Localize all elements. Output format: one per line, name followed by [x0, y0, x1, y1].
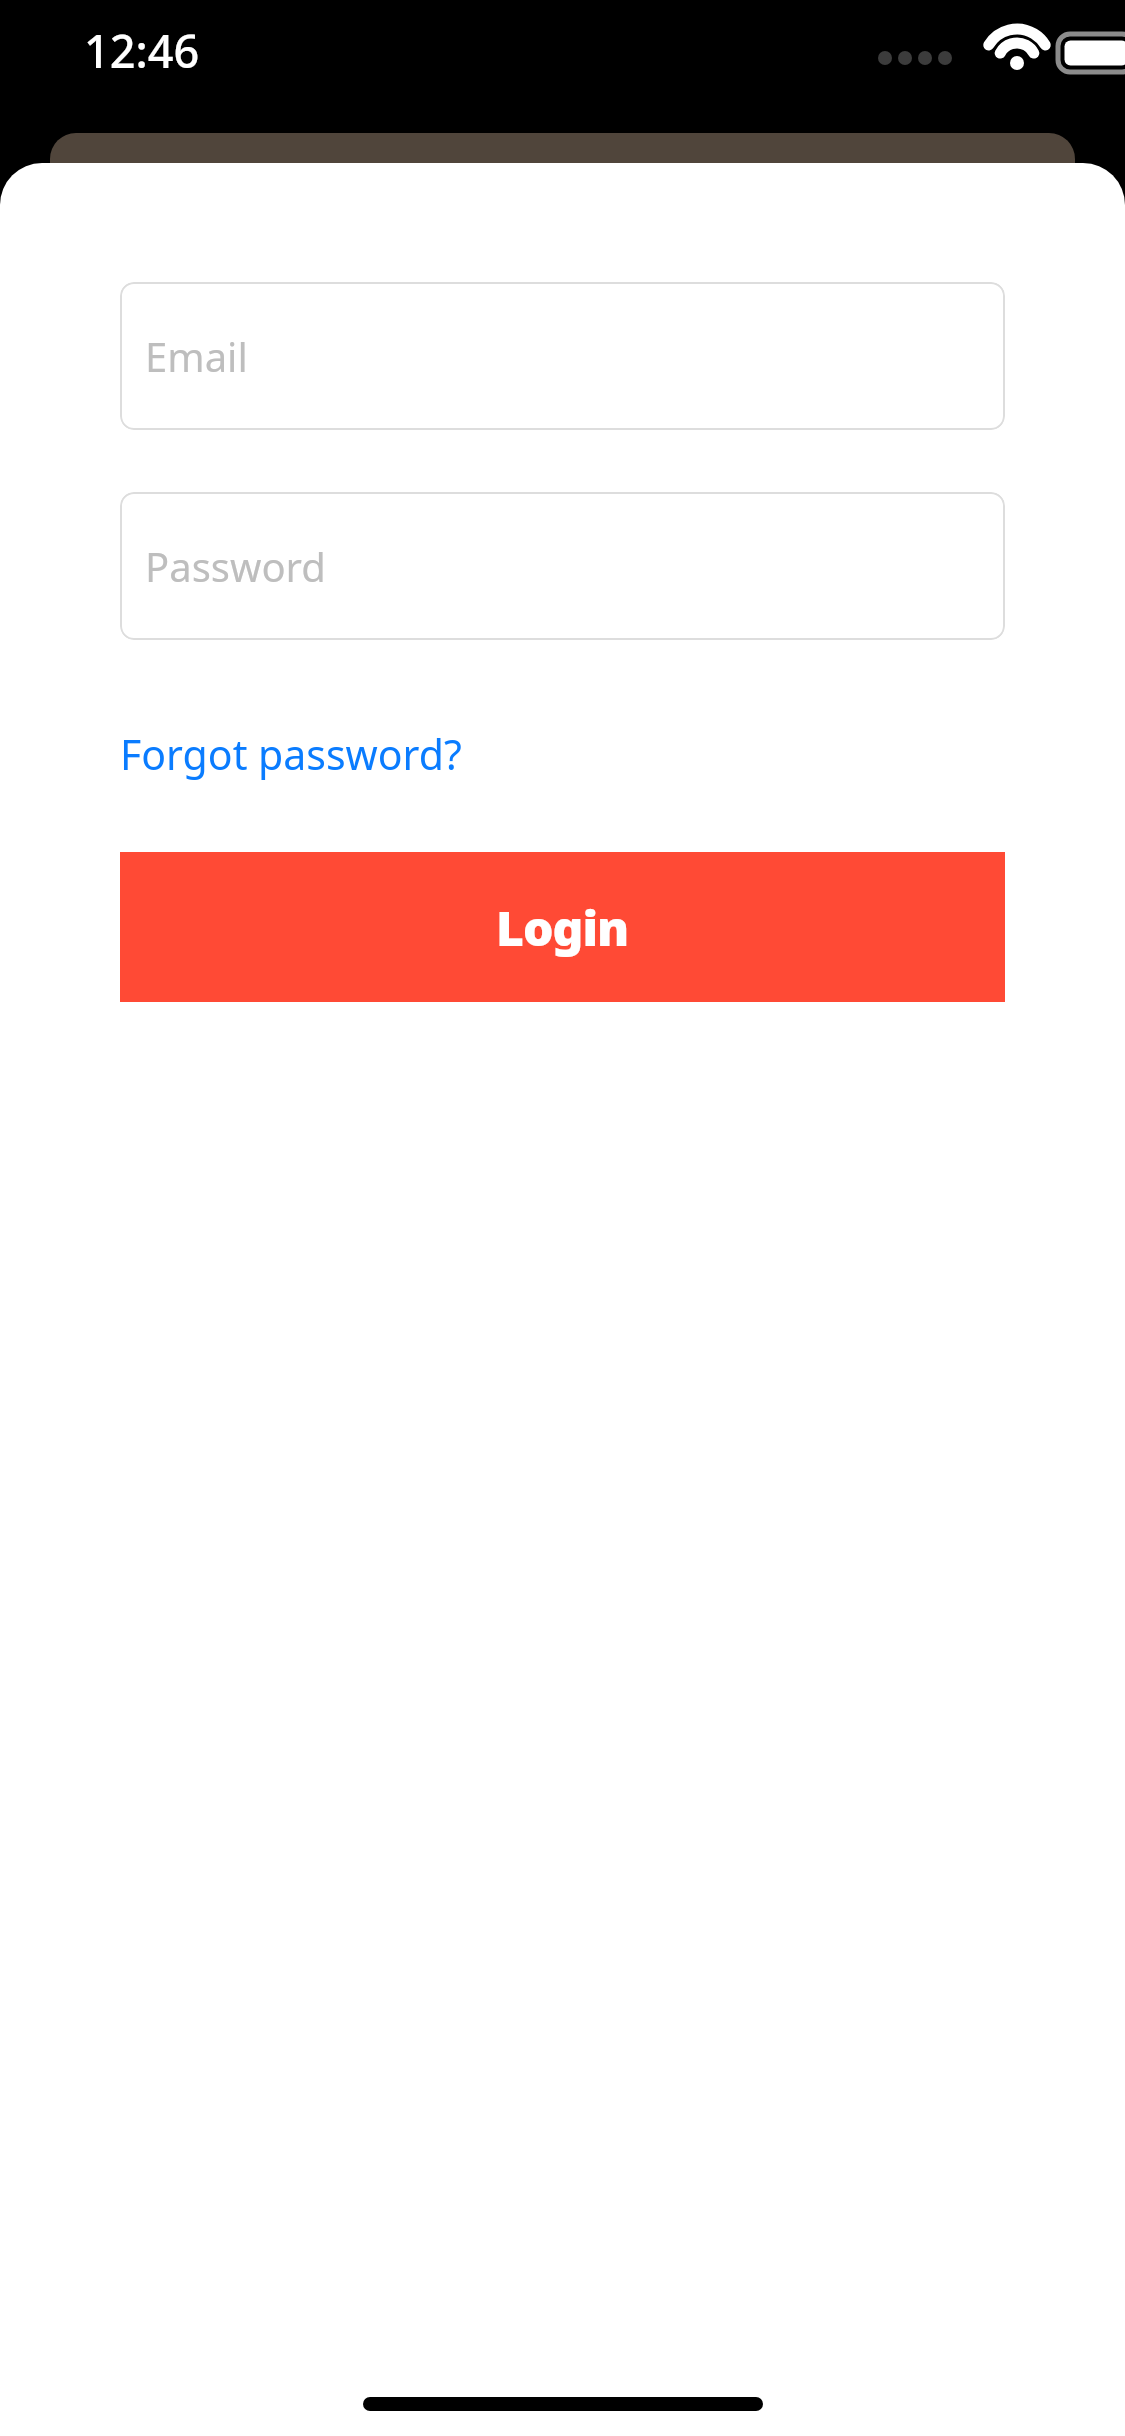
staticText: 12:46	[84, 20, 200, 81]
staticText: Email	[145, 329, 248, 383]
staticText: Password	[145, 539, 326, 593]
button[interactable]: Email	[120, 282, 1005, 430]
staticText: Forgot password?	[120, 726, 462, 782]
button[interactable]: Login	[120, 852, 1005, 1002]
staticText: Login	[496, 895, 629, 960]
button[interactable]: Password	[120, 492, 1005, 640]
button[interactable]: Forgot password?	[110, 716, 472, 792]
other: Signal, Wi-Fi and battery status	[875, 26, 1080, 71]
